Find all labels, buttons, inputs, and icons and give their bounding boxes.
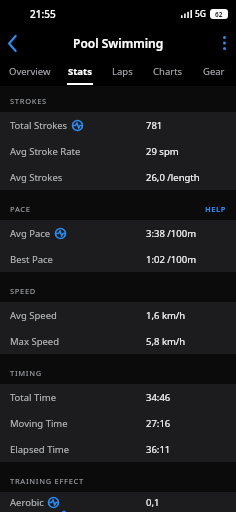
button[interactable]: Moving Time — [0, 410, 236, 436]
staticText: 781 — [146, 119, 226, 132]
staticText: Laps — [112, 65, 133, 78]
staticText: TRAINING EFFECT — [10, 476, 84, 486]
staticText: SPEED — [10, 286, 37, 296]
button[interactable]: Avg Pace — [0, 220, 236, 246]
staticText: Total Strokes — [10, 119, 68, 132]
staticText: 36:11 — [146, 443, 226, 456]
staticText: HELP — [205, 204, 226, 214]
button[interactable]: Aerobic — [0, 492, 236, 512]
staticText: 3:38 /100m — [146, 227, 226, 240]
staticText: 1:02 /100m — [146, 253, 226, 266]
staticText: 27:16 — [146, 417, 226, 430]
button[interactable]: Avg Speed — [0, 302, 236, 328]
button[interactable]: Total Time — [0, 384, 236, 410]
staticText: PACE — [10, 204, 31, 214]
staticText: Elapsed Time — [10, 443, 70, 456]
staticText: Avg Stroke Rate — [10, 145, 81, 158]
staticText: 5G — [195, 8, 207, 20]
staticText: STROKES — [10, 96, 47, 106]
staticText: 34:46 — [146, 391, 226, 404]
staticText: Stats — [68, 65, 92, 78]
staticText: Total Time — [10, 391, 57, 404]
staticText: 1,6 km/h — [146, 309, 226, 322]
staticText: Avg Pace — [10, 227, 51, 240]
staticText: 29 spm — [146, 145, 226, 158]
staticText: 0,1 — [146, 496, 226, 509]
button[interactable]: Back — [0, 30, 25, 57]
button[interactable]: Charts — [143, 58, 192, 86]
button[interactable]: More options — [213, 31, 236, 55]
button[interactable]: Gear — [192, 58, 236, 86]
staticText: Avg Speed — [10, 309, 57, 322]
staticText: Aerobic — [10, 496, 44, 509]
staticText: Moving Time — [10, 417, 68, 430]
button[interactable]: Avg Stroke Rate — [0, 138, 236, 164]
staticText: Overview — [9, 65, 51, 78]
staticText: Max Speed — [10, 335, 60, 348]
button[interactable]: Elapsed Time — [0, 436, 236, 462]
button[interactable]: Best Pace — [0, 246, 236, 272]
button[interactable]: Avg Strokes — [0, 164, 236, 190]
staticText: 21:55 — [30, 7, 56, 21]
button[interactable]: HELP — [195, 200, 236, 218]
staticText: Charts — [153, 65, 183, 78]
button[interactable]: Laps — [101, 58, 143, 86]
button[interactable]: Max Speed — [0, 328, 236, 354]
staticText: TIMING — [10, 368, 42, 378]
button[interactable]: Stats — [59, 58, 101, 86]
staticText: 5,8 km/h — [146, 335, 226, 348]
staticText: Gear — [203, 65, 225, 78]
button[interactable]: Total Strokes — [0, 112, 236, 138]
button[interactable]: Overview — [0, 58, 59, 86]
staticText: Best Pace — [10, 253, 53, 266]
staticText: 62 — [215, 10, 223, 19]
staticText: Avg Strokes — [10, 171, 63, 184]
staticText: Pool Swimming — [73, 35, 164, 51]
staticText: 26,0 /length — [146, 171, 226, 184]
